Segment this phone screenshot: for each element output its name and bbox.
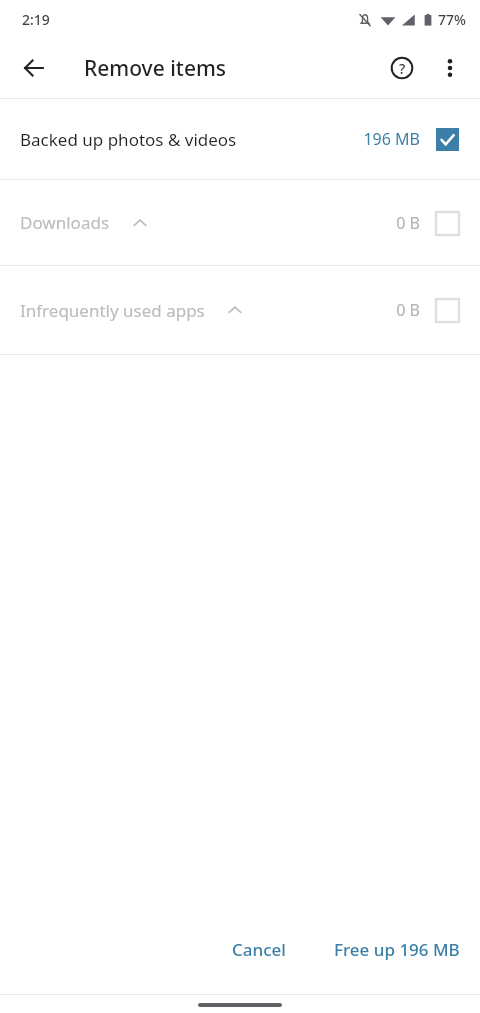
button[interactable]: Not selected	[434, 210, 460, 236]
staticText: ?	[399, 59, 406, 78]
button[interactable]: Not selected	[434, 297, 460, 323]
staticText: Remove items	[84, 54, 227, 83]
button[interactable]: More options	[426, 44, 474, 92]
staticText: 77%	[438, 10, 466, 29]
staticText: 0 B	[396, 299, 420, 321]
button[interactable]: Cancel	[220, 930, 298, 969]
button[interactable]: Backed up photos & videos	[0, 99, 480, 179]
button[interactable]: Back	[10, 44, 58, 92]
staticText: Infrequently used apps	[20, 299, 205, 322]
staticText: 0 B	[396, 212, 420, 234]
button[interactable]: Downloads	[0, 180, 480, 265]
button[interactable]: Infrequently used apps	[0, 266, 480, 354]
staticText: 196 MB	[363, 128, 420, 150]
staticText: Free up 196 MB	[334, 938, 460, 961]
staticText: Cancel	[232, 938, 286, 961]
button[interactable]: Selected	[434, 126, 460, 152]
staticText: 2:19	[22, 10, 50, 29]
button[interactable]: Free up 196 MB	[322, 930, 472, 969]
staticText: Backed up photos & videos	[20, 128, 237, 151]
staticText: Downloads	[20, 211, 110, 234]
button[interactable]: Help	[378, 44, 426, 92]
